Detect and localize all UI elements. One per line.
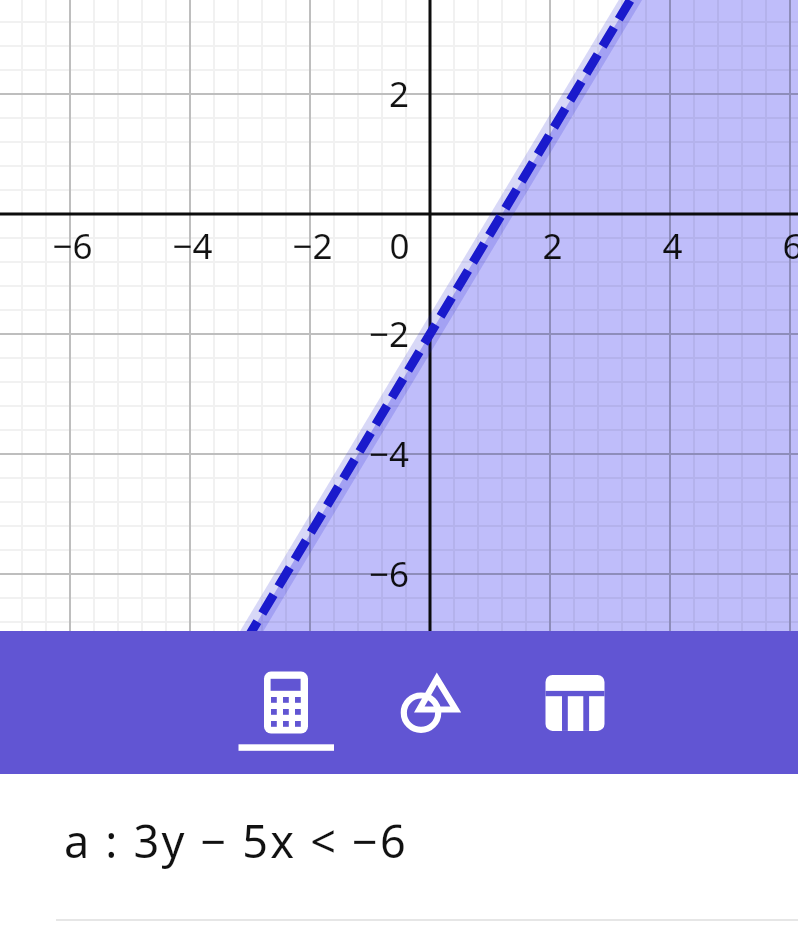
button[interactable]: Geometry (371, 631, 491, 774)
button[interactable]: Table (515, 631, 635, 774)
button[interactable]: a : 3y − 5x < −6 (0, 774, 798, 951)
staticText: a : 3y − 5x < −6 (64, 810, 408, 871)
button[interactable]: Calculator (226, 631, 346, 774)
